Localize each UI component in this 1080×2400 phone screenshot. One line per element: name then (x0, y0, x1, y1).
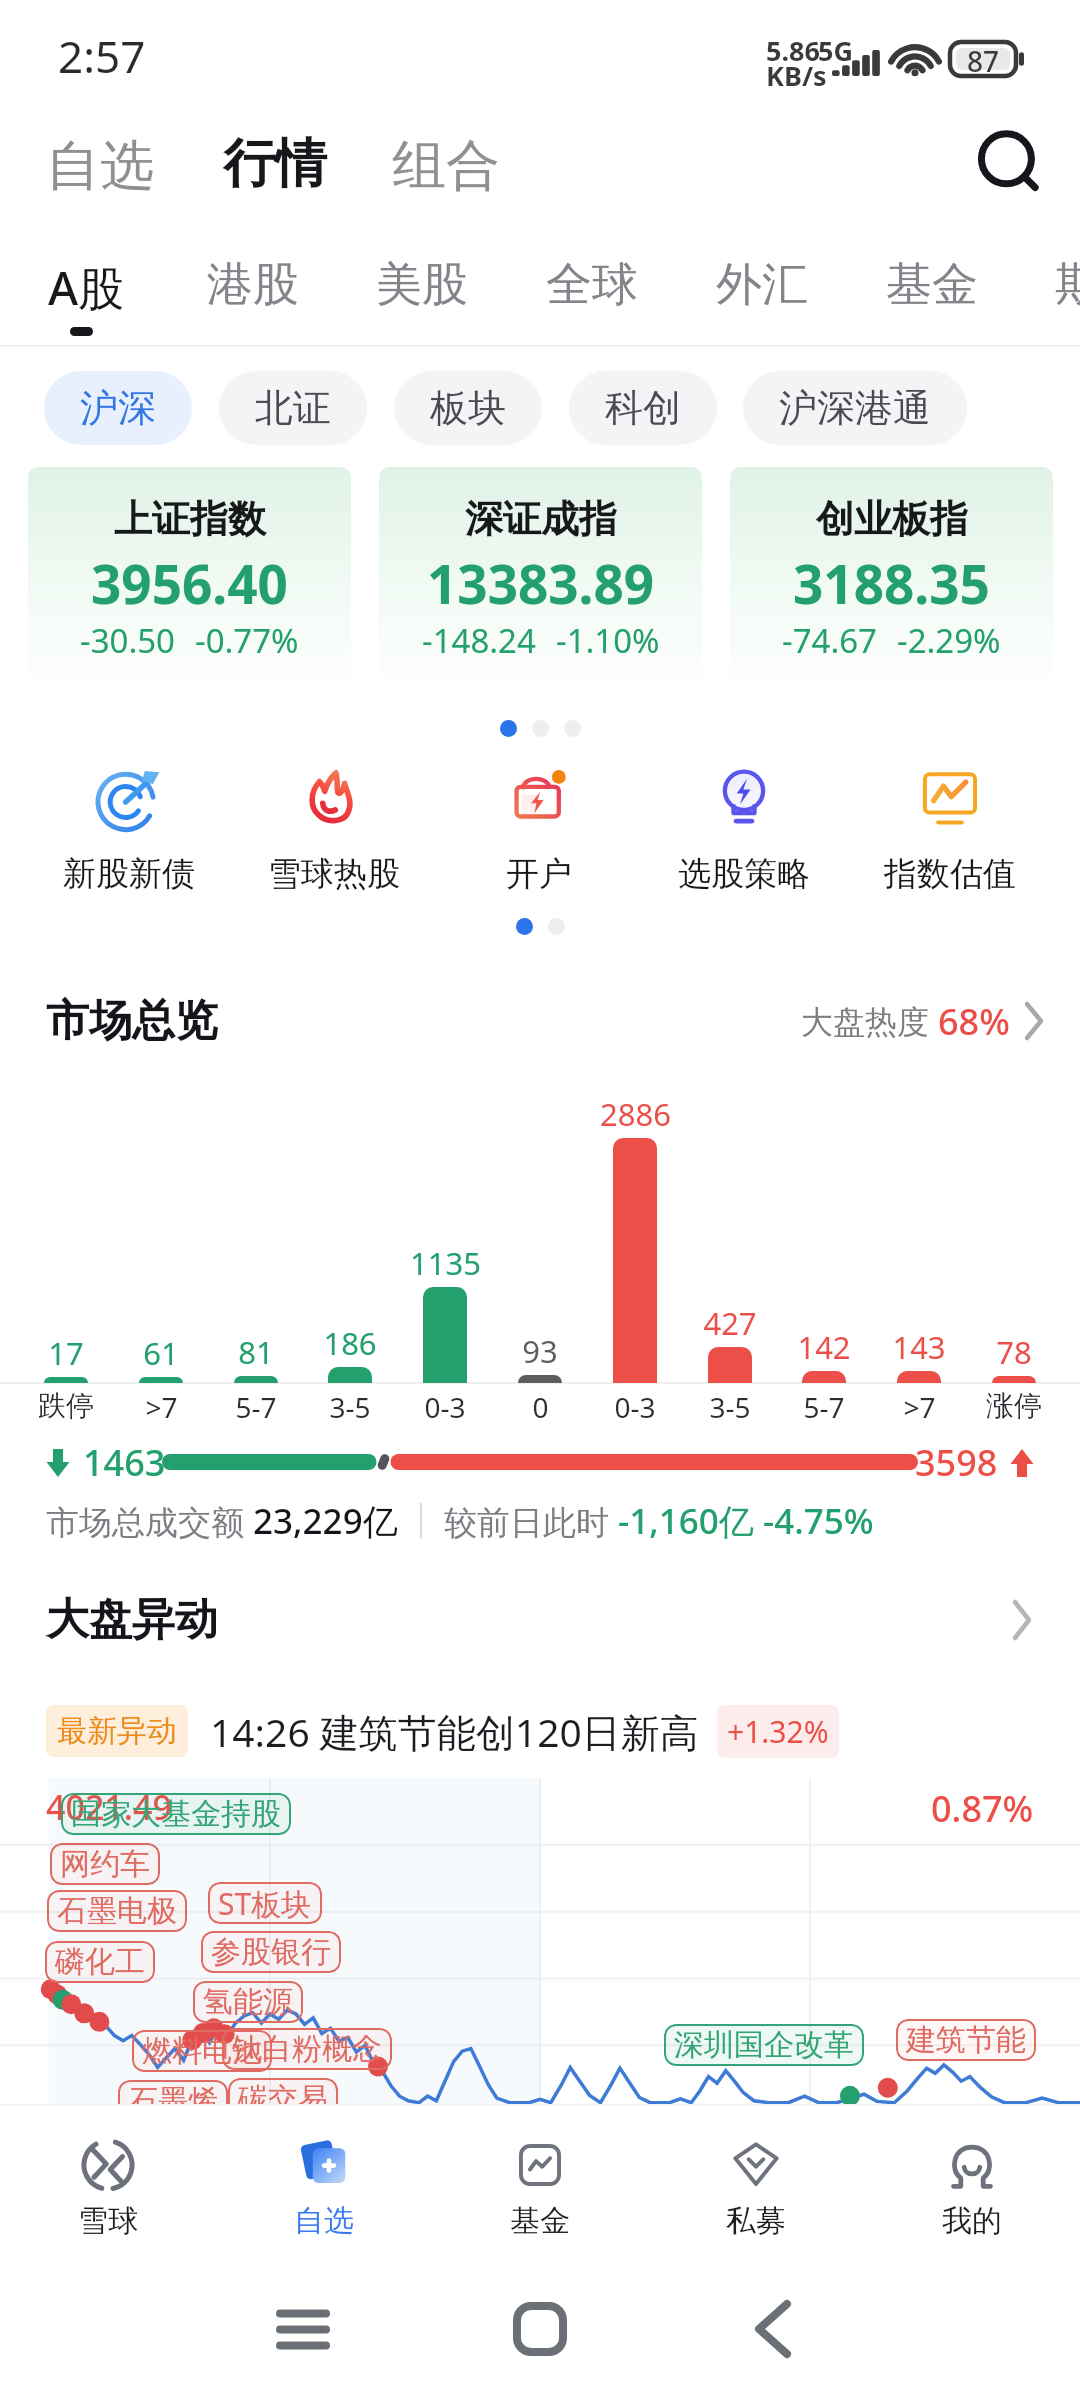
button[interactable]: 板块 (394, 371, 542, 445)
button[interactable]: 雪球 (0, 2104, 216, 2270)
staticText: 新股新债 (63, 853, 195, 895)
staticText: -4.75% (763, 1497, 874, 1545)
staticText: 5-7 (235, 1388, 277, 1426)
button[interactable]: Back (717, 2274, 827, 2384)
staticText: -74.67 (782, 618, 877, 663)
staticText: 基金 (886, 256, 978, 314)
staticText: 磷化工 (55, 1943, 145, 1981)
staticText: 板块 (430, 384, 506, 432)
staticText: 大盘异动 (46, 1593, 218, 1647)
staticText: -148.24 (422, 618, 536, 663)
staticText: 沪深港通 (779, 384, 931, 432)
button[interactable]: 组合 (376, 118, 516, 214)
staticText: 网约车 (60, 1845, 150, 1883)
staticText: -1.10% (556, 618, 660, 663)
staticText: 0-3 (424, 1388, 466, 1426)
button[interactable]: 行情 (207, 117, 343, 211)
staticText: 创业板指 (816, 495, 968, 543)
staticText: 港股 (207, 256, 299, 314)
staticText: 3-5 (329, 1388, 371, 1426)
staticText: 0 (532, 1388, 549, 1426)
staticText: 1135 (410, 1242, 481, 1284)
staticText: 427 (703, 1302, 757, 1344)
staticText: 3-5 (709, 1388, 751, 1426)
staticText: 行情 (223, 131, 327, 197)
staticText: 私募 (726, 2202, 786, 2240)
button[interactable]: More (992, 1590, 1052, 1650)
staticText: 北证 (255, 384, 331, 432)
button[interactable]: 雪球热股 (234, 765, 434, 895)
staticText: 大盘热度 (801, 999, 938, 1043)
button[interactable]: 创业板指 (730, 467, 1053, 681)
button[interactable]: Recents (248, 2274, 358, 2384)
button[interactable]: 基金 (870, 232, 994, 338)
button[interactable]: 外汇 (700, 232, 824, 338)
staticText: 0-3 (614, 1388, 656, 1426)
staticText: 涨停 (986, 1388, 1042, 1423)
button[interactable]: 选股策略 (644, 765, 844, 895)
button[interactable]: A股 (32, 232, 141, 343)
button[interactable]: 深证成指 (379, 467, 702, 681)
staticText: 78 (996, 1331, 1032, 1373)
button[interactable]: 全球 (530, 232, 654, 338)
staticText: A股 (48, 256, 125, 319)
button[interactable]: 大盘热度 (795, 991, 1050, 1051)
button[interactable]: 自选 (30, 118, 170, 214)
staticText: ST板块 (218, 1883, 312, 1924)
button[interactable]: 北证 (219, 371, 367, 445)
button[interactable]: 美股 (360, 232, 484, 338)
staticText: 基金 (510, 2202, 570, 2240)
button[interactable]: Home (485, 2274, 595, 2384)
button[interactable]: 沪深港通 (743, 371, 967, 445)
staticText: 指数估值 (884, 853, 1016, 895)
button[interactable]: 基金 (432, 2104, 648, 2270)
staticText: 1463 (83, 1438, 166, 1487)
button[interactable]: 上证指数 (28, 467, 351, 681)
staticText: 4021.49 (46, 1784, 172, 1830)
button[interactable]: 沪深 (44, 371, 192, 445)
staticText: 81 (238, 1331, 274, 1373)
staticText: -0.77% (195, 618, 299, 663)
button[interactable]: Search (962, 118, 1058, 214)
staticText: 3598 (915, 1438, 998, 1487)
staticText: 组合 (392, 132, 500, 200)
staticText: 碳交易 (238, 2080, 328, 2104)
staticText: 23,229亿 (253, 1497, 398, 1545)
staticText: 石墨电极 (57, 1892, 177, 1930)
staticText: -1,160亿 (618, 1497, 763, 1545)
staticText: 雪球 (78, 2202, 138, 2240)
staticText: 市场总览 (46, 994, 218, 1048)
staticText: 全球 (546, 256, 638, 314)
button[interactable]: 期 (1039, 232, 1080, 338)
staticText: 3956.40 (91, 547, 288, 619)
button[interactable]: 开户 (439, 765, 639, 895)
staticText: 跌停 (38, 1388, 94, 1423)
staticText: 雪球热股 (268, 853, 400, 895)
staticText: 上证指数 (114, 495, 266, 543)
button[interactable]: 私募 (648, 2104, 864, 2270)
staticText: 最新异动 (57, 1712, 177, 1750)
staticText: 市场总成交额 (46, 1499, 253, 1544)
button[interactable]: 科创 (569, 371, 717, 445)
staticText: 我的 (942, 2202, 1002, 2240)
button[interactable]: 指数估值 (850, 765, 1050, 895)
staticText: 3188.35 (793, 547, 990, 619)
button[interactable]: 港股 (191, 232, 315, 338)
button[interactable]: 我的 (864, 2104, 1080, 2270)
button[interactable]: 自选 (216, 2104, 432, 2270)
staticText: 68% (938, 997, 1010, 1045)
staticText: 5G (818, 32, 853, 69)
staticText: 143 (892, 1326, 946, 1368)
staticText: 外汇 (716, 256, 808, 314)
staticText: 142 (797, 1326, 851, 1368)
staticText: 61 (143, 1332, 179, 1374)
staticText: 深圳国企改革 (674, 2026, 854, 2064)
staticText: 钛白粉概念 (232, 2030, 382, 2068)
staticText: -2.29% (897, 618, 1001, 663)
staticText: 氢能源 (203, 1983, 293, 2021)
staticText: 国家大基金持股 (71, 1795, 281, 1833)
button[interactable]: 新股新债 (29, 765, 229, 895)
staticText: 2886 (600, 1093, 671, 1135)
staticText: 选股策略 (678, 853, 810, 895)
staticText: -30.50 (80, 618, 175, 663)
